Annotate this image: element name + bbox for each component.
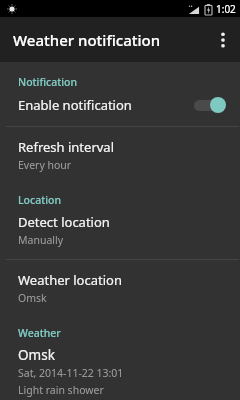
button[interactable]: Detect location [0, 207, 240, 249]
staticText: Weather notification [13, 30, 161, 50]
staticText: Manually [18, 233, 64, 247]
button[interactable]: Omsk [0, 340, 240, 397]
staticText: Omsk [18, 346, 55, 364]
staticText: Omsk [18, 291, 47, 305]
button[interactable]: More options [206, 17, 240, 62]
staticText: Enable notification [18, 96, 192, 114]
staticText: Location [18, 193, 62, 207]
staticText: Weather [18, 326, 61, 340]
staticText: Light rain shower [18, 383, 104, 397]
staticText: Notification [18, 75, 78, 89]
button[interactable]: Enable notification [0, 89, 240, 120]
staticText: 1:02 [216, 2, 236, 16]
button[interactable]: Refresh interval [0, 127, 240, 174]
staticText: Every hour [18, 158, 72, 172]
staticText: Weather location [18, 271, 122, 289]
staticText: Detect location [18, 213, 110, 231]
staticText: Refresh interval [18, 138, 115, 156]
button[interactable]: Enable notification toggle [192, 95, 226, 115]
button[interactable]: Weather location [0, 260, 240, 307]
staticText: Sat, 2014-11-22 13:01 [18, 366, 124, 380]
